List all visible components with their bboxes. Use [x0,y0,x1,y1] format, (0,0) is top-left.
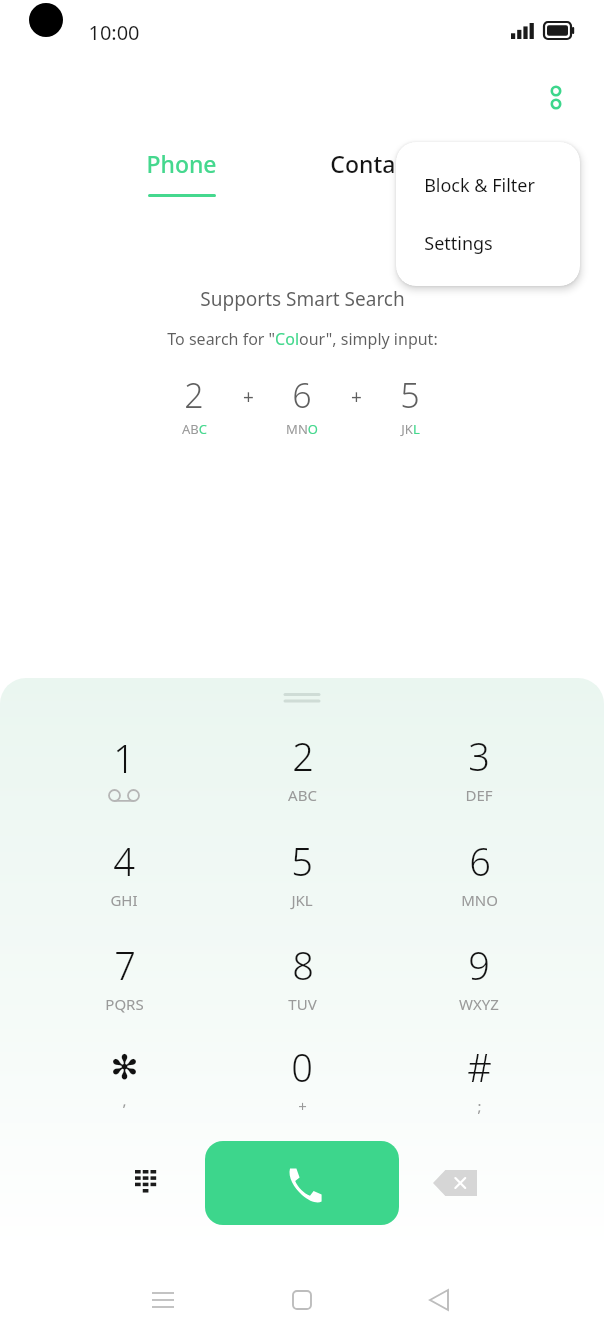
staticText: 10:00 [88,19,140,46]
staticText: MNO [286,420,318,438]
staticText: JKL [291,890,313,910]
button[interactable]: Home [274,1278,330,1322]
staticText: 2 [184,372,204,418]
staticText: 8 [292,939,314,991]
button[interactable]: More options [534,76,578,120]
staticText: 5 [291,835,313,887]
button[interactable]: Settings [396,214,580,272]
button[interactable]: Hide keypad [118,1153,178,1213]
staticText: 6 [292,372,312,418]
staticText: # [467,1041,492,1093]
staticText: GHI [110,890,138,910]
button[interactable]: 2 [232,719,372,815]
button[interactable]: 5 [232,824,372,920]
staticText: 5 [400,372,420,418]
button[interactable]: 8 [232,928,372,1024]
button[interactable]: 4 [54,824,194,920]
staticText: MNO [461,890,498,910]
staticText: + [298,1096,307,1116]
staticText: Phone [146,148,217,179]
button[interactable]: Block & Filter [396,156,580,214]
button[interactable]: 0 [232,1030,372,1126]
staticText: ABC [288,785,317,805]
staticText: ✻ [110,1047,139,1087]
staticText: 9 [468,939,490,991]
button[interactable]: Call [205,1141,399,1225]
button[interactable]: Phone [116,148,246,210]
button[interactable]: Contacts [330,148,490,194]
staticText: , [122,1090,127,1110]
staticText: Contacts [330,148,427,179]
button[interactable]: # [409,1030,549,1126]
staticText: PQRS [105,994,144,1014]
staticText: To search for "Colour", simply input: [167,328,438,350]
button[interactable]: 7 [54,928,194,1024]
staticText: Supports Smart Search [200,286,405,312]
staticText: 6 [469,835,491,887]
staticText: + [351,384,362,410]
staticText: 4 [113,835,135,887]
staticText: ; [477,1096,482,1116]
button[interactable]: ✻ [54,1030,194,1126]
button[interactable]: 9 [409,928,549,1024]
staticText: JKL [401,420,420,438]
staticText: 7 [114,939,136,991]
staticText: 2 [292,730,314,782]
button[interactable]: Recents [135,1278,191,1322]
staticText: TUV [288,994,317,1014]
button[interactable]: 6 [409,824,549,920]
button[interactable]: Backspace [425,1153,485,1213]
button[interactable]: 1 [54,719,194,815]
staticText: Block & Filter [424,173,535,198]
staticText: 3 [468,730,490,782]
staticText: 1 [113,732,135,784]
staticText: WXYZ [459,994,499,1014]
staticText: Settings [424,231,493,256]
staticText: 0 [291,1041,313,1093]
button[interactable]: Back [411,1278,467,1322]
staticText: ABC [182,420,207,438]
button[interactable]: 3 [409,719,549,815]
staticText: + [243,384,254,410]
staticText: DEF [465,785,493,805]
